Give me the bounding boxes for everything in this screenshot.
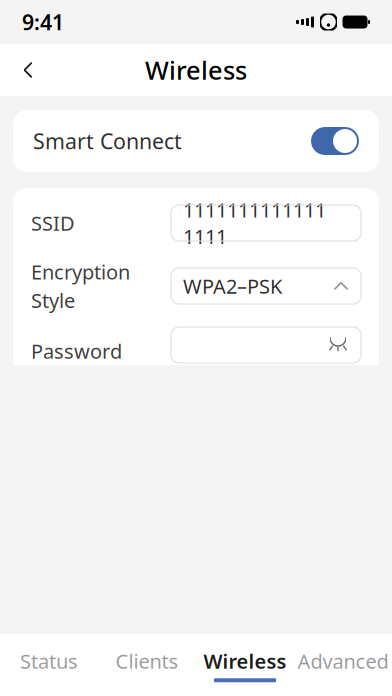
staticText: Wireless (145, 53, 247, 87)
staticText: Smart Connect (33, 127, 182, 155)
button[interactable]: Status (0, 634, 98, 696)
staticText: Style (31, 287, 75, 314)
button[interactable]: Wireless (196, 634, 294, 696)
staticText: 11111111111111111 (183, 196, 326, 249)
button[interactable]: Smart Connect toggle (311, 127, 359, 155)
staticText: Password (31, 338, 122, 364)
staticText: Status (20, 648, 78, 674)
staticText: Encryption (31, 258, 130, 285)
button[interactable]: Show password (171, 327, 361, 363)
staticText: Wireless (203, 648, 286, 674)
button[interactable]: Clients (98, 634, 196, 696)
staticText: Advanced (297, 648, 388, 674)
staticText: WPA2–PSK (183, 273, 282, 299)
button[interactable]: 11111111111111111 (171, 205, 361, 241)
staticText: 9:41 (22, 8, 64, 36)
staticText: Clients (115, 648, 178, 674)
button[interactable]: Advanced (294, 634, 392, 696)
staticText: SSID (31, 210, 75, 236)
button[interactable]: Back (6, 48, 50, 92)
button[interactable]: WPA2–PSK (171, 268, 361, 304)
